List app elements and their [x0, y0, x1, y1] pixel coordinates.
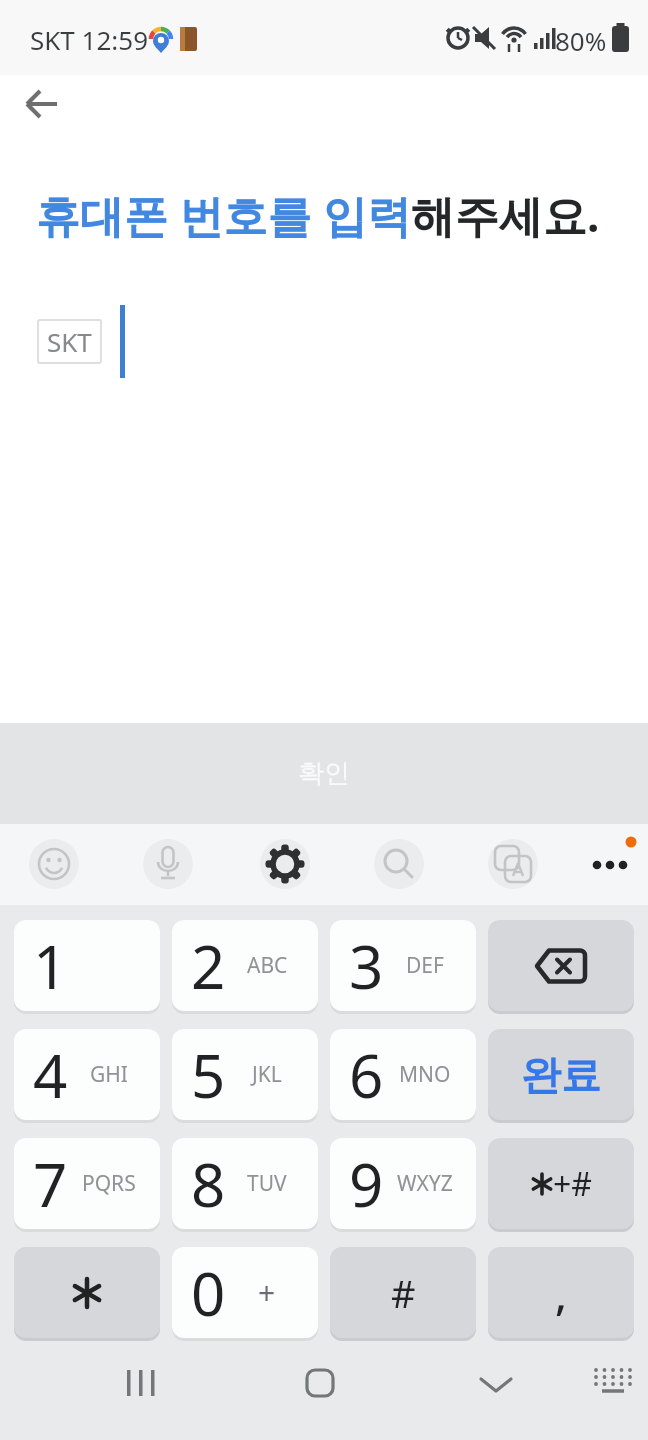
staticText: 확인 — [298, 757, 350, 790]
button[interactable] — [466, 1355, 526, 1410]
button[interactable]: SKT — [37, 319, 102, 364]
button[interactable]: 5 — [172, 1029, 318, 1120]
button[interactable] — [260, 839, 310, 889]
staticText: 5 — [191, 1034, 226, 1116]
staticText: + — [258, 1272, 276, 1313]
staticText: 8 — [191, 1143, 226, 1225]
button[interactable] — [29, 839, 79, 889]
button[interactable]: 0 — [172, 1247, 318, 1338]
staticText: # — [391, 1267, 416, 1319]
staticText: 0 — [191, 1252, 226, 1334]
button[interactable] — [374, 839, 424, 889]
staticText: DEF — [406, 951, 444, 980]
button[interactable] — [14, 1247, 160, 1338]
button[interactable] — [110, 1355, 170, 1410]
button[interactable] — [583, 840, 637, 888]
button[interactable]: , — [488, 1247, 634, 1338]
staticText: SKT — [47, 324, 92, 359]
staticText: ABC — [247, 951, 288, 980]
staticText: PQRS — [82, 1169, 136, 1198]
staticText: 4 — [33, 1034, 68, 1116]
staticText: , — [555, 1263, 568, 1323]
staticText: TUV — [247, 1169, 287, 1198]
staticText: SKT 12:59 — [30, 22, 149, 57]
button[interactable]: 3 — [330, 920, 476, 1011]
button[interactable] — [143, 839, 193, 889]
button[interactable]: 7 — [14, 1138, 160, 1229]
button[interactable]: 9 — [330, 1138, 476, 1229]
staticText: +# — [553, 1162, 592, 1206]
button[interactable] — [582, 1355, 642, 1410]
staticText: 3 — [349, 925, 384, 1007]
button[interactable]: 1 — [14, 920, 160, 1011]
staticText: 2 — [191, 925, 226, 1007]
staticText: JKL — [252, 1060, 282, 1089]
staticText: 완료 — [521, 1050, 601, 1100]
button[interactable]: 8 — [172, 1138, 318, 1229]
button[interactable]: 완료 — [488, 1029, 634, 1120]
staticText: 7 — [33, 1143, 68, 1225]
staticText: MNO — [399, 1060, 451, 1089]
button[interactable]: 6 — [330, 1029, 476, 1120]
button[interactable] — [488, 920, 634, 1011]
staticText: WXYZ — [397, 1169, 453, 1198]
staticText: 1 — [33, 925, 68, 1007]
button[interactable]: +# — [488, 1138, 634, 1229]
button[interactable] — [20, 81, 66, 127]
button[interactable]: # — [330, 1247, 476, 1338]
staticText: 9 — [349, 1143, 384, 1225]
staticText: 80% — [555, 23, 607, 58]
button[interactable]: 2 — [172, 920, 318, 1011]
button[interactable] — [488, 839, 538, 889]
button[interactable] — [290, 1355, 350, 1410]
staticText: GHI — [90, 1060, 128, 1089]
staticText: 휴대폰 번호를 입력해주세요. — [36, 185, 600, 245]
staticText: 6 — [349, 1034, 384, 1116]
button[interactable]: 4 — [14, 1029, 160, 1120]
